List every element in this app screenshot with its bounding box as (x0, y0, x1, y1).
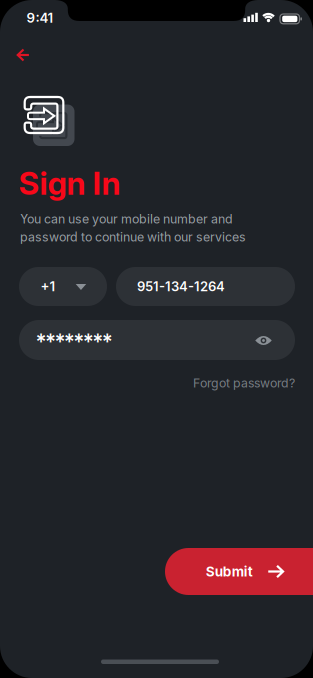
staticText: * (73, 329, 84, 354)
staticText: 951-134-1264 (137, 279, 225, 294)
staticText: * (64, 329, 75, 354)
button[interactable]: Show password (251, 328, 275, 352)
staticText: * (35, 329, 46, 354)
staticText: * (45, 329, 56, 354)
staticText: * (54, 329, 65, 354)
staticText: Sign In (18, 164, 120, 202)
staticText: * (102, 329, 113, 354)
button[interactable]: Forgot password? (193, 376, 295, 390)
button[interactable]: Back (7, 41, 39, 69)
staticText: * (83, 329, 94, 354)
staticText: * (92, 329, 103, 354)
staticText: Submit (206, 563, 253, 580)
staticText: +1 (40, 278, 55, 294)
button[interactable]: Country code +1 (19, 267, 107, 306)
button[interactable]: Submit (165, 548, 313, 595)
staticText: Forgot password? (193, 376, 295, 390)
staticText: You can use your mobile number and passw… (20, 211, 246, 244)
staticText: 9:41 (26, 10, 53, 26)
